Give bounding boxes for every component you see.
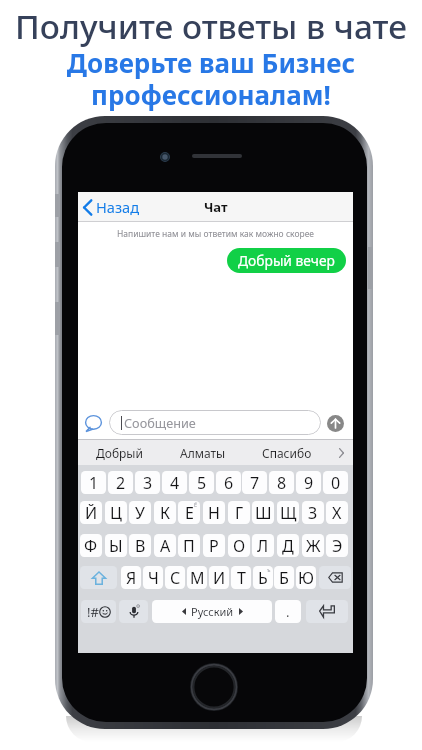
staticText: Э: [332, 535, 343, 557]
staticText: К: [160, 502, 171, 524]
button[interactable]: Н: [203, 501, 225, 524]
staticText: П: [183, 535, 195, 557]
staticText: Ф: [84, 535, 98, 557]
button[interactable]: Г: [228, 501, 250, 524]
button[interactable]: 0: [323, 471, 348, 494]
button[interactable]: 3: [135, 471, 160, 494]
button[interactable]: 8: [269, 471, 294, 494]
button[interactable]: Алматы: [161, 439, 245, 466]
button[interactable]: Э: [326, 534, 348, 557]
staticText: 1: [89, 472, 99, 494]
staticText: Ш: [255, 502, 272, 524]
button[interactable]: 9: [296, 471, 321, 494]
button[interactable]: Назад: [83, 192, 140, 222]
staticText: Ё: [194, 501, 198, 508]
button[interactable]: Ж: [302, 534, 324, 557]
staticText: Т: [237, 567, 246, 589]
staticText: Ь: [258, 567, 268, 589]
staticText: 3: [143, 472, 153, 494]
staticText: Алматы: [180, 445, 226, 461]
button[interactable]: Ф: [80, 534, 102, 557]
staticText: .: [286, 603, 290, 621]
button[interactable]: В: [129, 534, 151, 557]
staticText: Ю: [298, 567, 314, 589]
staticText: А: [160, 535, 171, 557]
staticText: С: [170, 567, 181, 589]
button[interactable]: Backspace: [319, 566, 351, 589]
button[interactable]: 5: [189, 471, 214, 494]
staticText: ъ: [267, 566, 271, 573]
staticText: 4: [170, 472, 180, 494]
staticText: З: [308, 502, 318, 524]
staticText: !#: [87, 603, 99, 621]
staticText: Е: [185, 502, 194, 524]
button[interactable]: Symbols and emoji: [81, 600, 116, 623]
staticText: Русский: [191, 604, 234, 619]
staticText: Получите ответы в чате: [0, 3, 422, 48]
staticText: Б: [279, 567, 289, 589]
button[interactable]: А: [154, 534, 176, 557]
button[interactable]: Д: [277, 534, 299, 557]
staticText: Сообщение: [124, 414, 196, 431]
button[interactable]: К: [154, 501, 176, 524]
button[interactable]: Shift: [80, 566, 117, 589]
staticText: Добрый вечер: [238, 251, 335, 270]
button[interactable]: М: [187, 566, 207, 589]
button[interactable]: С: [165, 566, 185, 589]
button[interactable]: .: [275, 600, 301, 623]
button[interactable]: 1: [81, 471, 106, 494]
button[interactable]: Й: [80, 501, 102, 524]
staticText: Доверьте ваш Бизнес профессионалам!: [0, 45, 422, 113]
button[interactable]: У: [129, 501, 151, 524]
staticText: 5: [197, 472, 207, 494]
staticText: Ц: [110, 502, 122, 524]
button[interactable]: Voice input: [119, 600, 148, 623]
button[interactable]: И: [209, 566, 229, 589]
staticText: Я: [126, 567, 137, 589]
button[interactable]: Ш: [252, 501, 274, 524]
button[interactable]: П: [178, 534, 200, 557]
staticText: М: [190, 567, 205, 589]
button[interactable]: Б: [274, 566, 294, 589]
staticText: Спасибо: [262, 445, 312, 461]
button[interactable]: Ю: [296, 566, 316, 589]
button[interactable]: Home: [190, 663, 238, 711]
button[interactable]: Л: [252, 534, 274, 557]
staticText: Р: [209, 535, 219, 557]
button[interactable]: 6: [216, 471, 241, 494]
staticText: 2: [116, 472, 126, 494]
button[interactable]: Ч: [143, 566, 163, 589]
staticText: Напишите нам и мы ответим как можно скор…: [78, 228, 353, 240]
button[interactable]: Русский: [152, 600, 272, 623]
button[interactable]: Return: [306, 600, 348, 623]
button[interactable]: Спасибо: [245, 439, 329, 466]
button[interactable]: Send: [327, 415, 344, 432]
button[interactable]: Добрый: [78, 439, 161, 466]
staticText: Х: [332, 502, 342, 524]
button[interactable]: 7: [242, 471, 267, 494]
staticText: Добрый: [96, 445, 143, 461]
staticText: И: [213, 567, 226, 589]
button[interactable]: Я: [121, 566, 141, 589]
button[interactable]: Сообщение: [109, 410, 321, 435]
button[interactable]: 2: [108, 471, 133, 494]
button[interactable]: More suggestions: [329, 439, 353, 466]
button[interactable]: О: [228, 534, 250, 557]
staticText: О: [233, 535, 246, 557]
button[interactable]: 4: [162, 471, 187, 494]
button[interactable]: Р: [203, 534, 225, 557]
button[interactable]: З: [302, 501, 324, 524]
staticText: 7: [250, 472, 260, 494]
button[interactable]: Х: [326, 501, 348, 524]
button[interactable]: Ы: [105, 534, 127, 557]
staticText: 0: [331, 472, 341, 494]
button[interactable]: Е: [178, 501, 200, 524]
button[interactable]: Ь: [253, 566, 273, 589]
staticText: Г: [235, 502, 244, 524]
staticText: Ж: [306, 535, 321, 557]
button[interactable]: Т: [231, 566, 251, 589]
staticText: Чат: [204, 198, 228, 216]
button[interactable]: Щ: [277, 501, 299, 524]
staticText: Й: [85, 502, 98, 524]
button[interactable]: Ц: [105, 501, 127, 524]
